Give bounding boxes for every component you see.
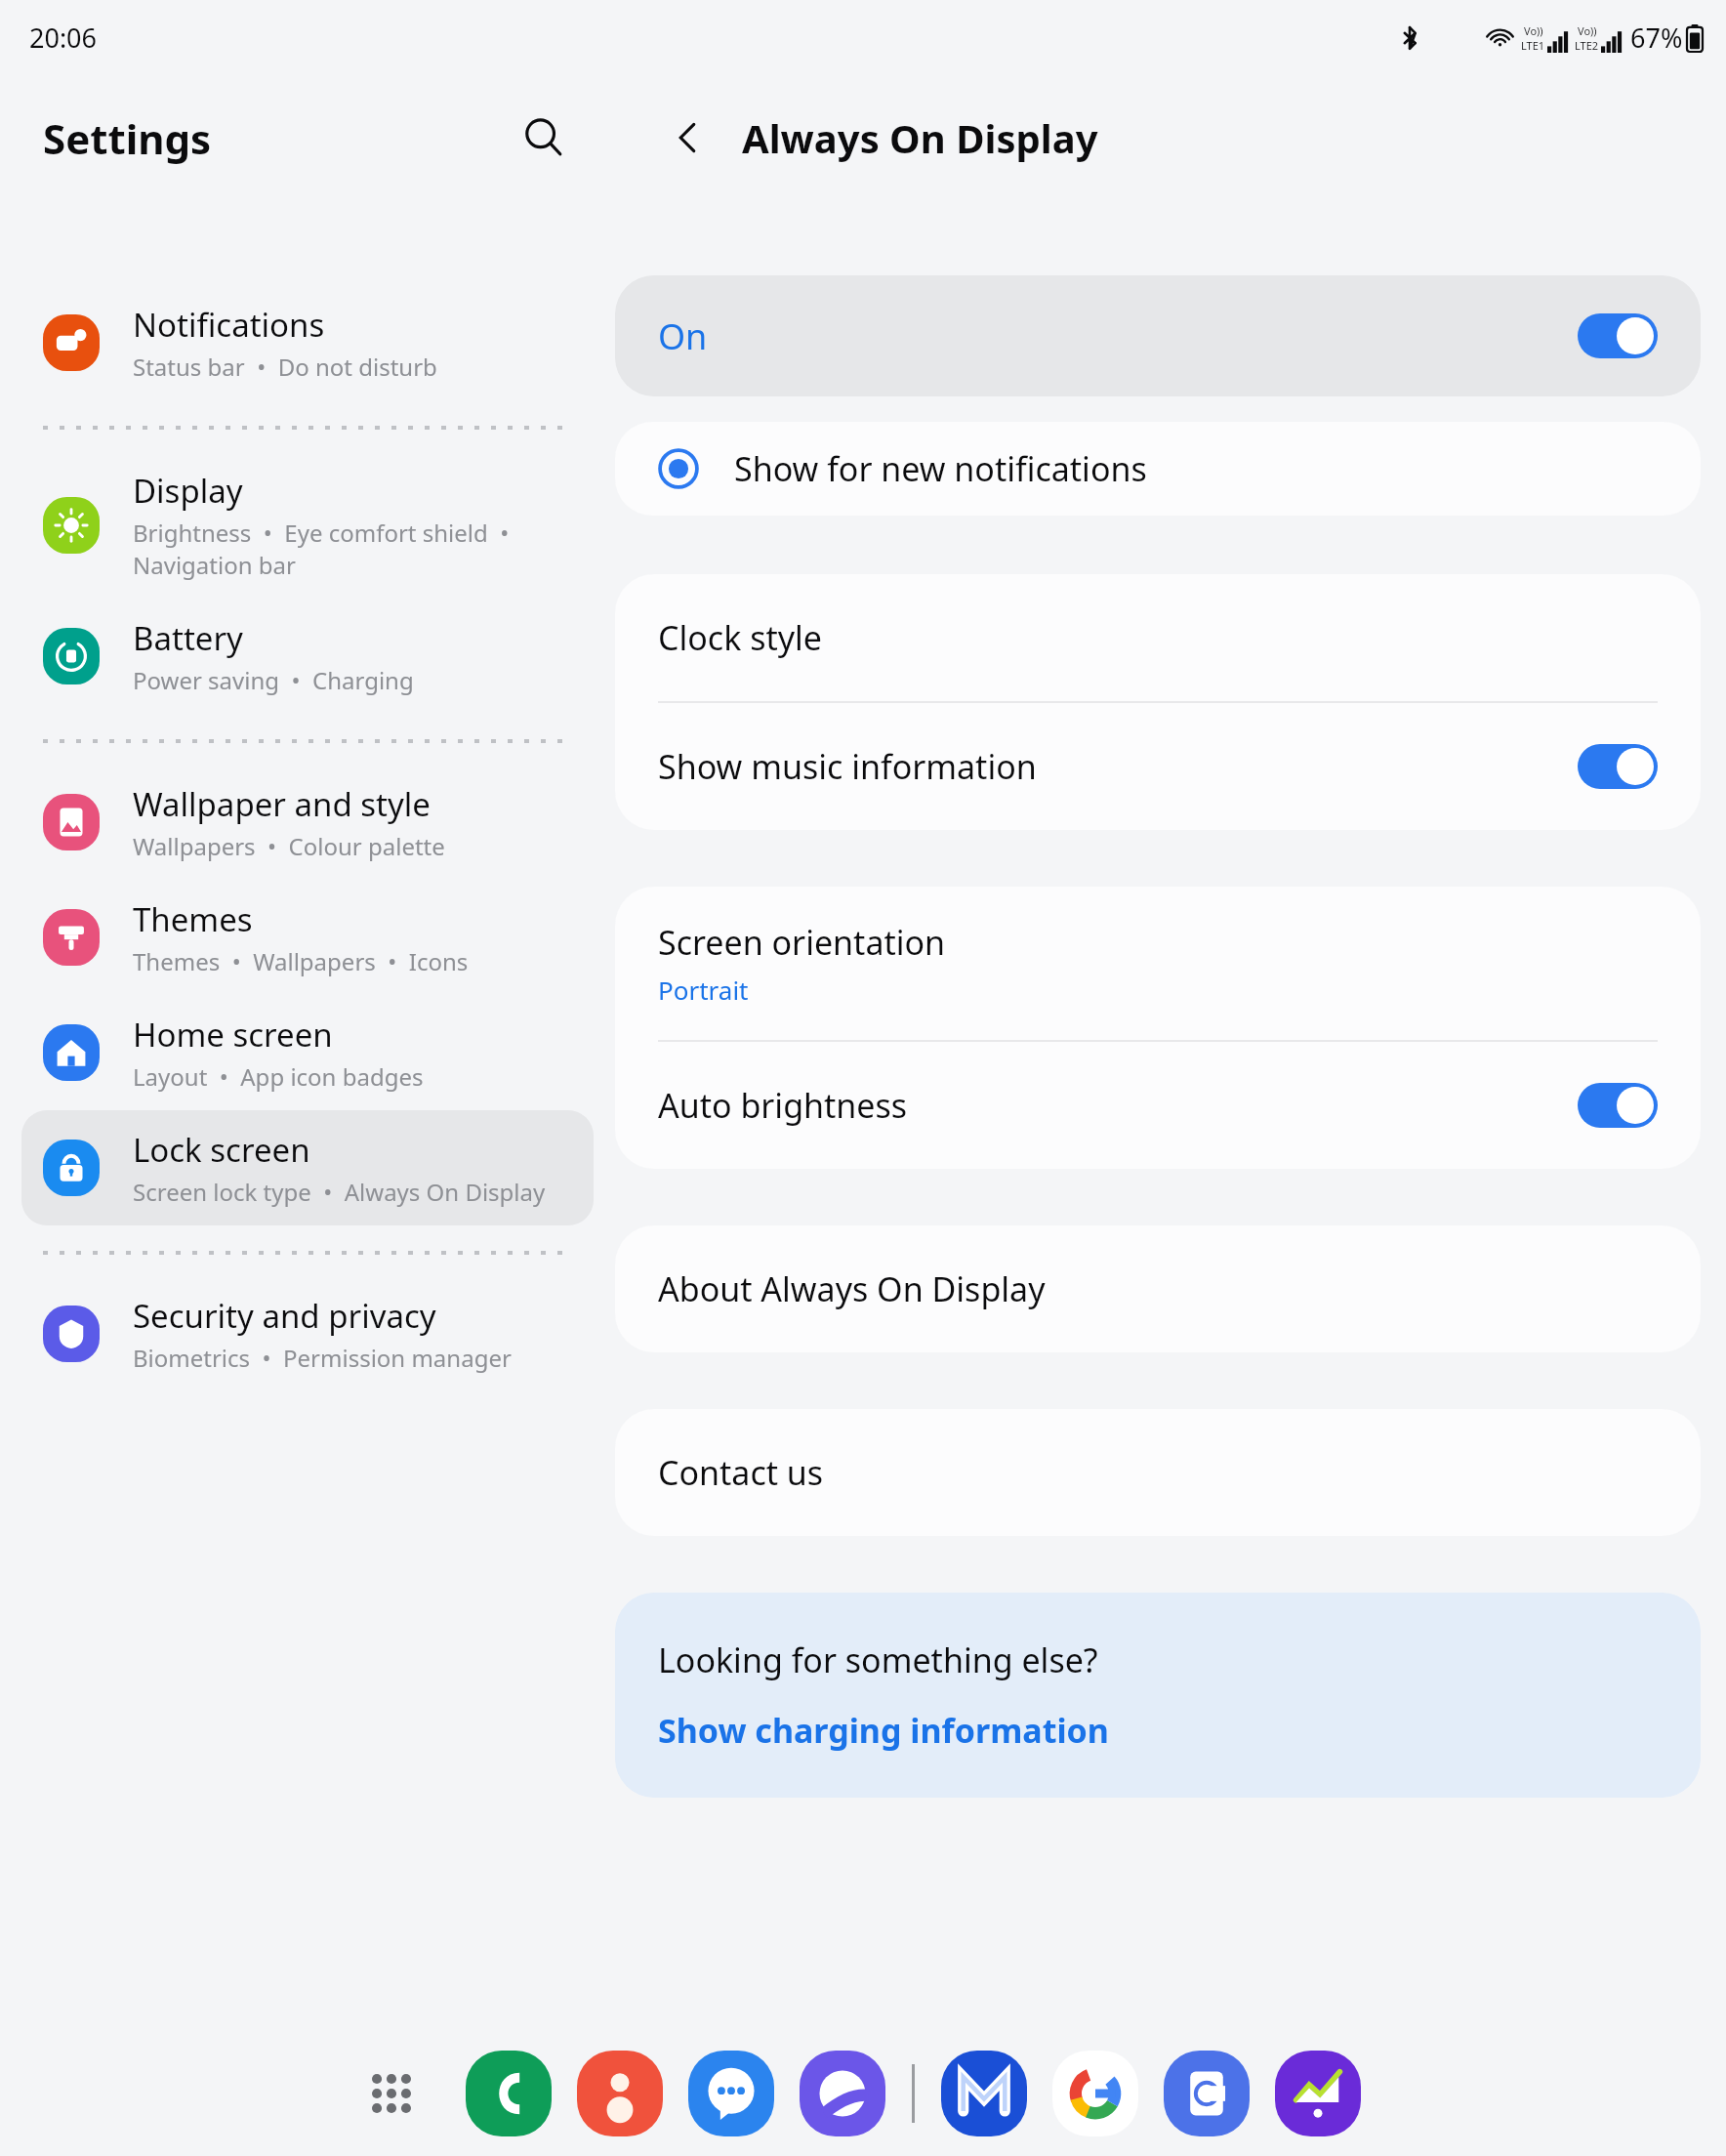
staticText: On — [658, 312, 708, 360]
button[interactable]: Home screen — [21, 995, 594, 1110]
button[interactable]: Show music information — [615, 703, 1701, 830]
button[interactable]: About Always On Display — [615, 1225, 1701, 1352]
button[interactable]: Back — [656, 106, 719, 169]
staticText: 67% — [1630, 20, 1683, 56]
staticText: Screen orientation — [658, 920, 946, 965]
staticText: Settings — [43, 110, 212, 166]
button[interactable]: Battery — [21, 599, 594, 714]
button[interactable]: Microsoft — [941, 2051, 1027, 2136]
staticText: Notifications — [133, 303, 325, 347]
staticText: Biometrics • Permission manager — [133, 1342, 512, 1374]
staticText: Home screen — [133, 1013, 333, 1057]
button[interactable]: Auto brightness — [615, 1042, 1701, 1169]
staticText: Lock screen — [133, 1128, 310, 1172]
staticText: Vo)) — [1578, 23, 1597, 38]
staticText: Battery — [133, 616, 243, 660]
button[interactable]: Show for new notifications — [615, 422, 1701, 516]
button[interactable]: Contacts — [577, 2051, 663, 2136]
staticText: Show charging information — [658, 1708, 1109, 1753]
button[interactable]: Calendar — [1164, 2051, 1250, 2136]
button[interactable]: Lock screen — [21, 1110, 594, 1225]
staticText: Screen lock type • Always On Display — [133, 1176, 546, 1208]
button[interactable]: Search — [510, 104, 578, 172]
button[interactable]: Toggle — [1578, 744, 1658, 789]
staticText: LTE1 — [1521, 38, 1545, 53]
staticText: LTE2 — [1575, 38, 1599, 53]
staticText: Layout • App icon badges — [133, 1060, 424, 1093]
staticText: Show for new notifications — [734, 446, 1147, 491]
staticText: About Always On Display — [658, 1266, 1046, 1311]
button[interactable]: Toggle — [1578, 313, 1658, 358]
staticText: Security and privacy — [133, 1294, 436, 1338]
button[interactable]: Yahoo — [1275, 2051, 1361, 2136]
staticText: Wallpaper and style — [133, 782, 431, 826]
staticText: Auto brightness — [658, 1083, 908, 1128]
staticText: Themes — [133, 897, 253, 941]
staticText: Looking for something else? — [658, 1638, 1098, 1682]
staticText: Always On Display — [742, 111, 1098, 164]
staticText: Wallpapers • Colour palette — [133, 830, 445, 862]
staticText: Clock style — [658, 615, 822, 660]
button[interactable]: On — [615, 275, 1701, 396]
staticText: Show music information — [658, 744, 1037, 789]
button[interactable]: Themes — [21, 880, 594, 995]
staticText: Contact us — [658, 1450, 824, 1495]
staticText: 20:06 — [29, 20, 98, 56]
staticText: Vo)) — [1524, 23, 1543, 38]
staticText: Navigation bar — [133, 549, 296, 581]
button[interactable]: Notifications — [21, 285, 594, 400]
button[interactable]: Apps — [353, 2055, 430, 2132]
staticText: Power saving • Charging — [133, 664, 414, 696]
staticText: Brightness • Eye comfort shield • — [133, 517, 510, 549]
button[interactable]: Wallpaper and style — [21, 765, 594, 880]
staticText: Themes • Wallpapers • Icons — [133, 945, 469, 977]
staticText: Display — [133, 469, 243, 513]
button[interactable]: Screen orientation — [615, 887, 1701, 1040]
button[interactable]: Toggle — [1578, 1083, 1658, 1128]
button[interactable]: Looking for something else? — [615, 1593, 1701, 1798]
button[interactable]: Messages — [688, 2051, 774, 2136]
button[interactable]: Display — [21, 451, 594, 599]
staticText: Portrait — [658, 973, 749, 1007]
staticText: Status bar • Do not disturb — [133, 351, 437, 383]
button[interactable]: Google — [1052, 2051, 1138, 2136]
button[interactable]: Clock style — [615, 574, 1701, 701]
button[interactable]: Phone — [466, 2051, 552, 2136]
button[interactable]: Contact us — [615, 1409, 1701, 1536]
button[interactable]: Security and privacy — [21, 1276, 594, 1391]
button[interactable]: Internet — [800, 2051, 885, 2136]
